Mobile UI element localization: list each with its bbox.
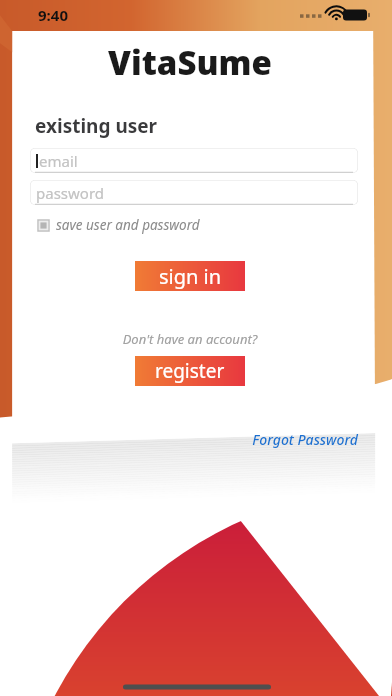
staticText: save user and password <box>56 216 200 234</box>
staticText: existing user <box>35 113 158 139</box>
button[interactable]: Forgot Password <box>30 430 358 449</box>
button[interactable]: email <box>30 148 358 173</box>
staticText: Don't have an account? <box>26 330 354 348</box>
staticText: password <box>36 183 104 203</box>
staticText: sign in <box>159 263 222 290</box>
button[interactable]: save user and password <box>35 214 202 236</box>
button[interactable]: sign in <box>135 261 245 291</box>
staticText: register <box>155 358 225 384</box>
staticText: VitaSume <box>26 40 354 85</box>
staticText: 9:40 <box>38 5 68 25</box>
button[interactable]: password <box>30 180 358 205</box>
staticText: email <box>39 151 78 171</box>
button[interactable]: register <box>135 356 245 386</box>
